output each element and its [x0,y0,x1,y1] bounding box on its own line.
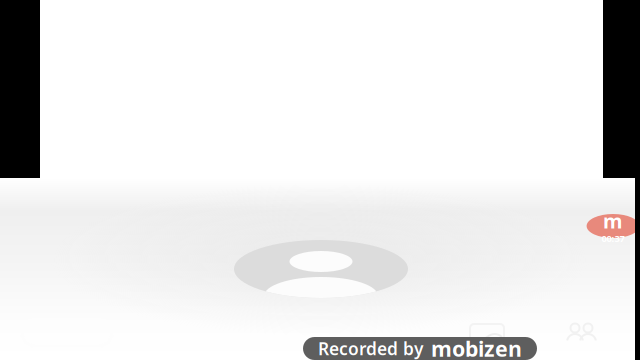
staticText: mobizen [431,334,522,360]
button[interactable]: Send photo [468,321,506,345]
button[interactable]: Add participants [564,321,602,345]
staticText: m [603,207,623,234]
staticText: Recorded by [318,337,423,360]
staticText: 00:37 [601,232,624,244]
